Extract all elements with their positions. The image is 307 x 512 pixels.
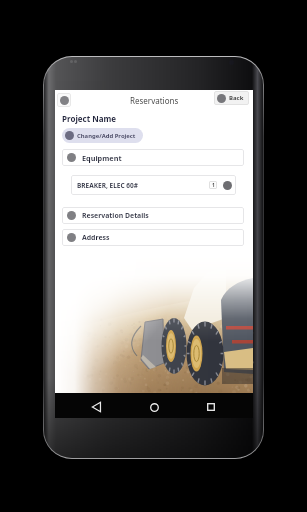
staticText: Reservation Details (82, 211, 149, 220)
button[interactable]: Equipment (62, 149, 244, 166)
button[interactable]: Back (86, 397, 106, 417)
button[interactable]: Address (62, 229, 244, 246)
button[interactable]: Home (144, 397, 164, 417)
staticText: Address (82, 233, 110, 242)
staticText: Back (229, 94, 244, 102)
button[interactable]: Change/Add Project (62, 128, 143, 143)
button[interactable]: Back (214, 91, 249, 105)
button[interactable]: Reservation Details (62, 207, 244, 224)
button[interactable]: Recents (201, 397, 221, 417)
staticText: BREAKER, ELEC 60# (77, 181, 138, 190)
staticText: Reservations (130, 95, 179, 106)
staticText: Change/Add Project (77, 132, 136, 140)
button[interactable]: BREAKER, ELEC 60# (71, 175, 236, 195)
staticText: Equipment (82, 153, 122, 163)
button[interactable]: Menu (57, 93, 71, 107)
staticText: Project Name (62, 113, 117, 124)
staticText: 1 (212, 182, 215, 189)
